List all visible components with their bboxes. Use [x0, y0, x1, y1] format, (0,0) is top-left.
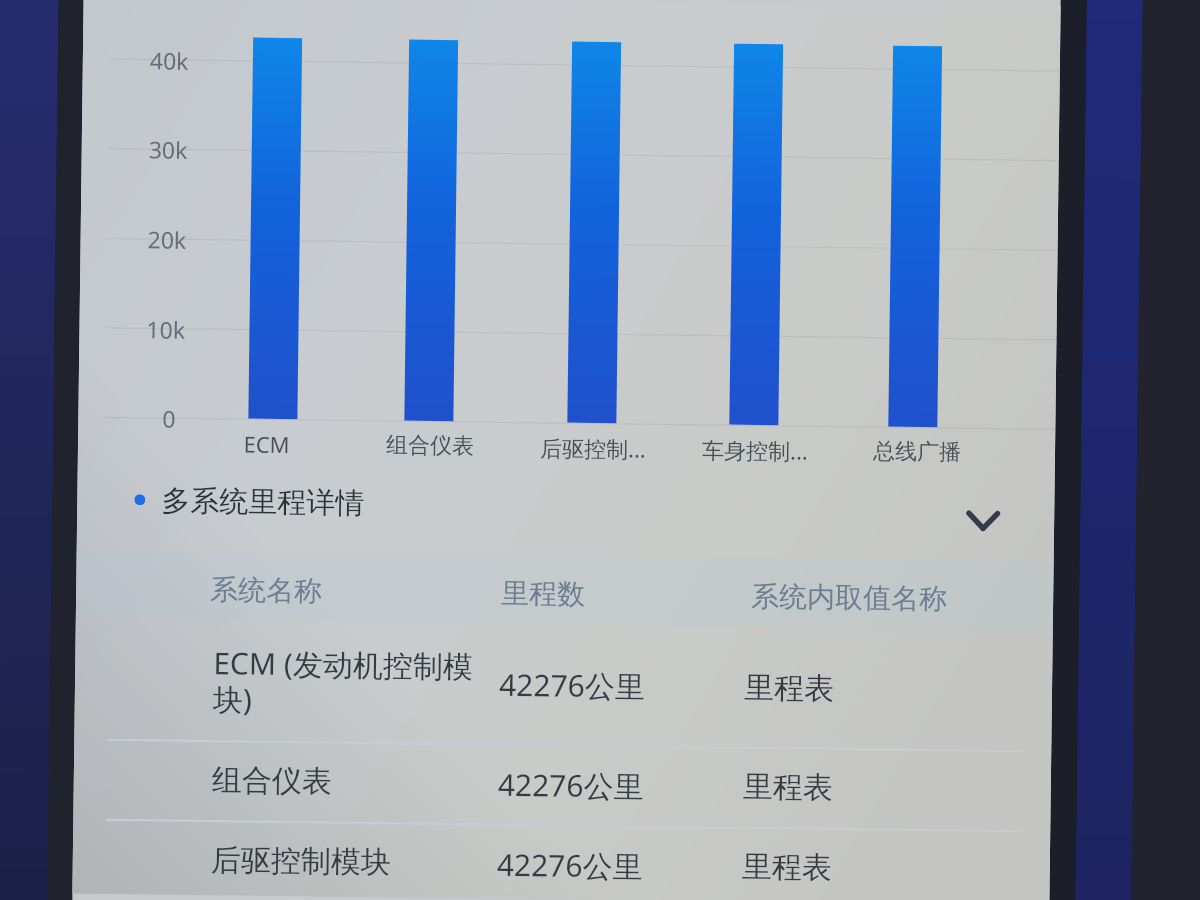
staticText: 车身控制... [702, 434, 808, 466]
staticText: 总线广播 [873, 437, 961, 466]
staticText: 里程表 [741, 848, 832, 887]
staticText: 系统内取值名称 [751, 579, 947, 616]
staticText: 40k [150, 44, 189, 76]
staticText: 里程表 [744, 669, 834, 708]
button[interactable]: 组合仪表 [73, 738, 1051, 831]
staticText: 42276公里 [497, 764, 644, 806]
staticText: 10k [146, 313, 186, 345]
staticText: 20k [147, 223, 187, 255]
staticText: 42276公里 [499, 664, 645, 707]
button[interactable]: 多系统里程详情 [77, 471, 1055, 542]
staticText: 里程表 [742, 768, 833, 807]
staticText: 里程数 [501, 576, 585, 612]
staticText: 后驱控制模块 [211, 841, 391, 881]
staticText: 30k [149, 133, 188, 165]
staticText: 多系统里程详情 [161, 482, 364, 522]
staticText: 系统名称 [210, 572, 322, 608]
staticText: 42276公里 [496, 844, 643, 886]
button[interactable]: 后驱控制模块 [72, 818, 1050, 900]
button[interactable]: ECM (发动机控制模块) [74, 619, 1053, 751]
other: Collapse section [956, 493, 1010, 548]
staticText: 组合仪表 [386, 431, 474, 460]
staticText: ECM (发动机控制模块) [213, 642, 475, 722]
staticText: 0 [162, 402, 177, 434]
staticText: 后驱控制... [540, 432, 646, 463]
staticText: 组合仪表 [212, 761, 332, 801]
staticText: ECM [243, 428, 290, 459]
